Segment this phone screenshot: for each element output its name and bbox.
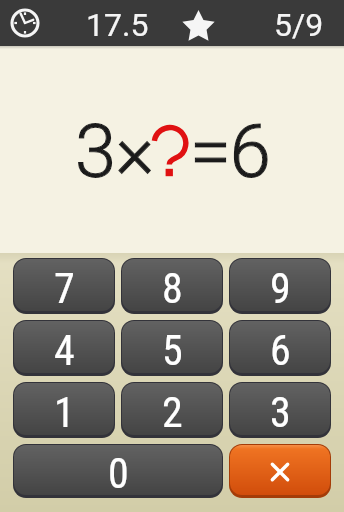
staticText: 1	[54, 388, 75, 435]
staticText: 4	[54, 326, 75, 373]
staticText: 9	[270, 264, 291, 311]
staticText: 0	[108, 449, 129, 495]
staticText: 8	[162, 264, 183, 311]
button[interactable]: 1	[13, 382, 115, 438]
staticText: 3×	[75, 108, 154, 195]
staticText: 6	[270, 326, 291, 373]
staticText: =6	[190, 108, 270, 195]
button[interactable]: 0	[13, 444, 223, 498]
staticText: 5	[162, 326, 183, 373]
staticText: 2	[162, 388, 183, 435]
button[interactable]: 7	[13, 258, 115, 314]
staticText: =6	[190, 108, 270, 195]
button[interactable]: 2	[121, 382, 223, 438]
button[interactable]: 3	[229, 382, 331, 438]
button[interactable]: 5	[121, 320, 223, 376]
button[interactable]	[229, 444, 331, 498]
staticText: 3×	[75, 108, 154, 195]
button[interactable]: 9	[229, 258, 331, 314]
button[interactable]: 4	[13, 320, 115, 376]
button[interactable]: 6	[229, 320, 331, 376]
staticText: 3	[270, 388, 291, 435]
staticText: 5/9	[274, 6, 324, 44]
button[interactable]: 8	[121, 258, 223, 314]
staticText: 7	[54, 264, 75, 311]
staticText: 17.5	[86, 6, 149, 44]
